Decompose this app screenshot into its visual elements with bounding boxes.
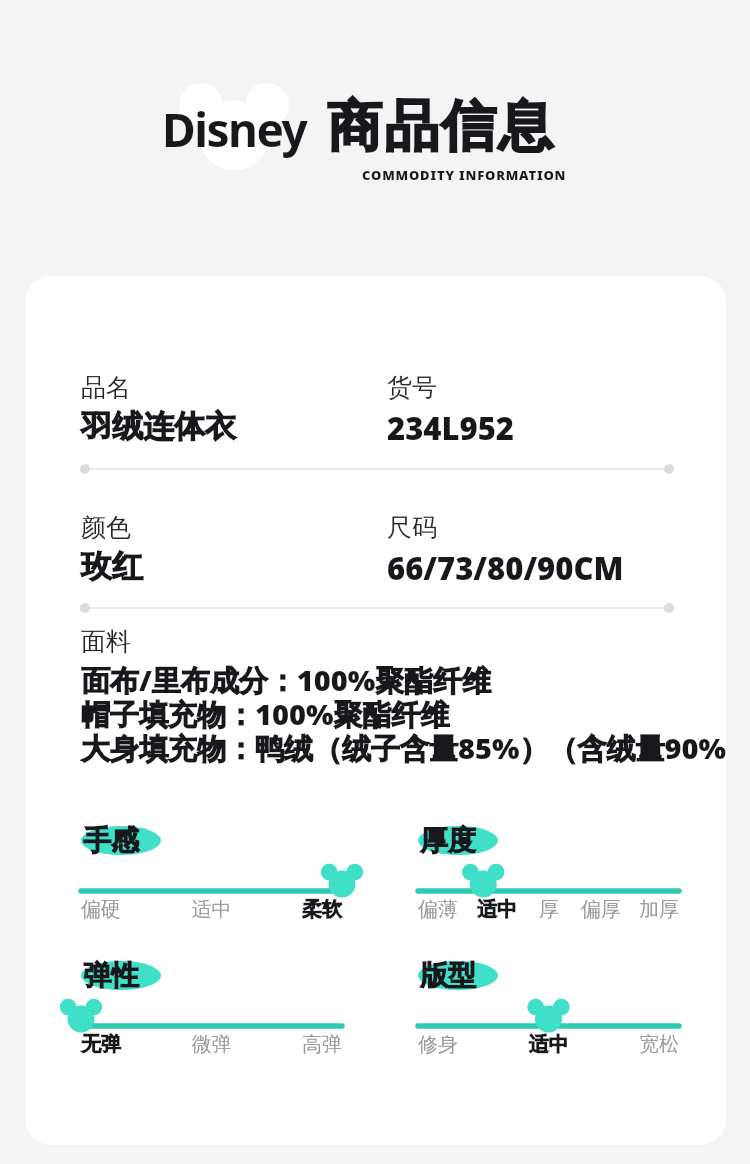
staticText: 234L952 xyxy=(387,407,515,449)
staticText: 大身填充物：鸭绒（绒子含量85%）（含绒量90%） xyxy=(81,728,726,768)
staticText: 高弹 xyxy=(255,1032,342,1057)
staticText: 帽子填充物：100%聚酯纤维 xyxy=(81,694,450,734)
staticText: 面料 xyxy=(81,626,131,657)
staticText: 尺码 xyxy=(387,512,437,543)
staticText: Disney xyxy=(162,98,307,161)
staticText: COMMODITY INFORMATION xyxy=(362,166,567,184)
staticText: 加厚 xyxy=(627,897,679,922)
staticText: 宽松 xyxy=(592,1032,679,1057)
staticText: 货号 xyxy=(387,372,437,403)
staticText: 羽绒连体衣 xyxy=(81,407,236,446)
staticText: 适中 xyxy=(168,897,255,922)
staticText: 适中 xyxy=(471,897,523,922)
staticText: 品名 xyxy=(81,372,131,403)
staticText: 玫红 xyxy=(81,547,143,586)
button[interactable]: 版型 xyxy=(418,956,679,1062)
staticText: 弹性 xyxy=(83,958,139,993)
staticText: 面布/里布成分：100%聚酯纤维 xyxy=(81,660,492,700)
button[interactable]: 手感 xyxy=(81,821,342,927)
staticText: 手感 xyxy=(83,823,139,858)
staticText: 偏硬 xyxy=(81,897,168,922)
staticText: 版型 xyxy=(420,958,476,993)
staticText: 修身 xyxy=(418,1032,505,1057)
staticText: 微弹 xyxy=(168,1032,255,1057)
staticText: 柔软 xyxy=(255,897,342,922)
staticText: 66/73/80/90CM xyxy=(387,547,624,589)
button[interactable]: 品名 xyxy=(81,372,387,446)
staticText: 厚度 xyxy=(420,823,476,858)
staticText: 偏薄 xyxy=(418,897,471,922)
staticText: 商品信息 xyxy=(326,92,554,161)
button[interactable]: 弹性 xyxy=(81,956,342,1062)
button[interactable]: 尺码 xyxy=(387,512,624,589)
staticText: 颜色 xyxy=(81,512,131,543)
staticText: 厚 xyxy=(523,897,575,922)
button[interactable]: Disney xyxy=(158,76,310,182)
button[interactable]: 货号 xyxy=(387,372,515,449)
staticText: 无弹 xyxy=(81,1032,168,1057)
button[interactable]: 厚度 xyxy=(418,821,679,927)
staticText: 偏厚 xyxy=(575,897,627,922)
button[interactable]: 颜色 xyxy=(81,512,387,586)
staticText: 适中 xyxy=(505,1032,592,1057)
